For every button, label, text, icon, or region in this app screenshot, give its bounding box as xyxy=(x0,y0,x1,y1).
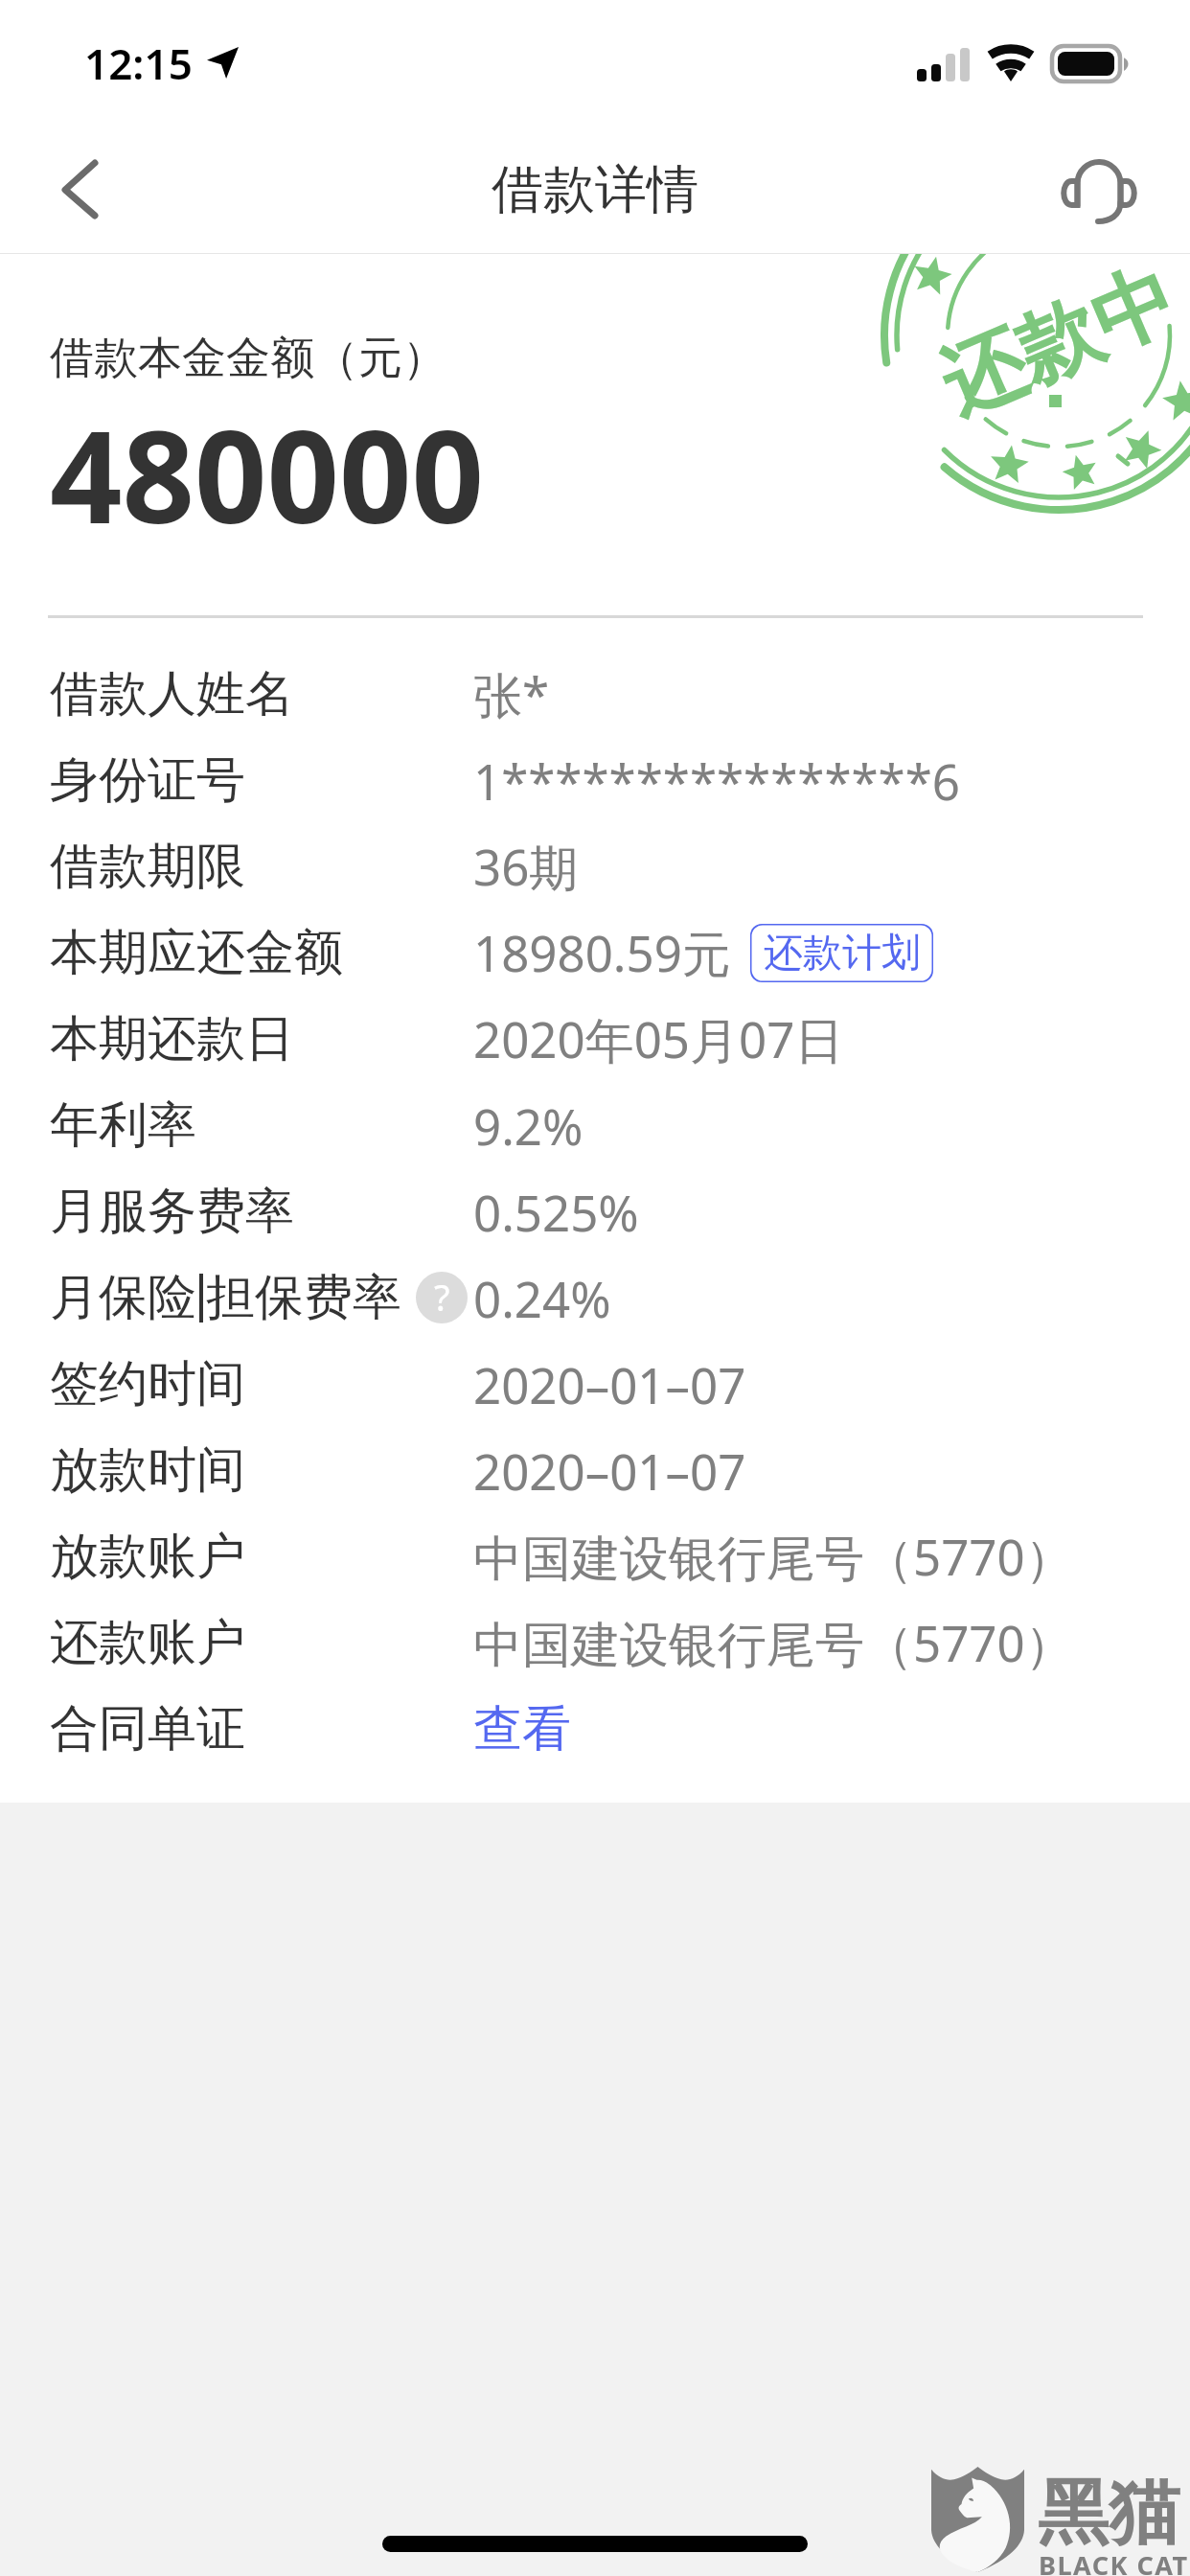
button[interactable]: 借款人姓名 xyxy=(0,651,1190,737)
button[interactable]: Customer service xyxy=(1046,126,1190,253)
staticText: 480000 xyxy=(50,388,485,561)
staticText: 还款计划 xyxy=(764,929,921,978)
button[interactable]: 签约时间 xyxy=(0,1341,1190,1427)
staticText: 18980.59元 xyxy=(473,919,731,986)
staticText: 黑猫 xyxy=(1038,2469,1179,2558)
staticText: 查看 xyxy=(473,1698,571,1759)
staticText: 12:15 xyxy=(84,34,193,92)
button[interactable]: 月服务费率 xyxy=(0,1168,1190,1254)
staticText: 借款期限 xyxy=(50,836,245,897)
staticText: 1****************6 xyxy=(473,747,960,814)
staticText: 中国建设银行尾号（5770） xyxy=(473,1609,1074,1676)
staticText: 本期应还金额 xyxy=(50,922,343,983)
button[interactable]: Back xyxy=(0,126,144,253)
staticText: ? xyxy=(434,1272,450,1322)
staticText: 本期还款日 xyxy=(50,1008,294,1069)
staticText: 中国建设银行尾号（5770） xyxy=(473,1523,1074,1590)
button[interactable]: 还款账户 xyxy=(0,1599,1190,1686)
button[interactable]: 借款期限 xyxy=(0,823,1190,909)
staticText: 9.2% xyxy=(473,1092,584,1159)
staticText: 合同单证 xyxy=(50,1698,245,1759)
staticText: 担保费率 xyxy=(206,1267,401,1328)
staticText: 放款账户 xyxy=(50,1526,245,1587)
staticText: 借款人姓名 xyxy=(50,663,294,724)
staticText: BLACK CAT xyxy=(1039,2547,1189,2576)
button[interactable]: 年利率 xyxy=(0,1082,1190,1168)
staticText: 还款中 xyxy=(926,254,1190,437)
staticText: 0.24% xyxy=(473,1265,611,1331)
staticText: 还款账户 xyxy=(50,1612,245,1673)
staticText: 2020年05月07日 xyxy=(473,1005,844,1072)
button[interactable]: 放款账户 xyxy=(0,1513,1190,1599)
staticText: 签约时间 xyxy=(50,1353,245,1414)
staticText: 2020–01–07 xyxy=(473,1351,746,1417)
staticText: 借款本金金额（元） xyxy=(50,331,446,386)
staticText: 身份证号 xyxy=(50,749,245,811)
staticText: 张* xyxy=(473,660,550,727)
button[interactable]: 身份证号 xyxy=(0,737,1190,823)
button[interactable]: Help xyxy=(416,1272,468,1323)
staticText: 年利率 xyxy=(50,1094,196,1156)
button[interactable]: 合同单证 xyxy=(0,1686,1190,1772)
button[interactable]: 本期还款日 xyxy=(0,996,1190,1082)
button[interactable]: 本期应还金额 xyxy=(0,909,1190,996)
staticText: 0.525% xyxy=(473,1179,639,1245)
button[interactable]: 放款时间 xyxy=(0,1427,1190,1513)
staticText: 放款时间 xyxy=(50,1439,245,1501)
button[interactable]: 还款计划 xyxy=(750,924,933,982)
staticText: 2020–01–07 xyxy=(473,1437,746,1504)
staticText: 借款详情 xyxy=(492,157,698,222)
staticText: 36期 xyxy=(473,833,579,900)
staticText: 月保险 xyxy=(50,1267,196,1328)
button[interactable]: 月保险 xyxy=(0,1254,1190,1341)
staticText: 月服务费率 xyxy=(50,1181,294,1242)
